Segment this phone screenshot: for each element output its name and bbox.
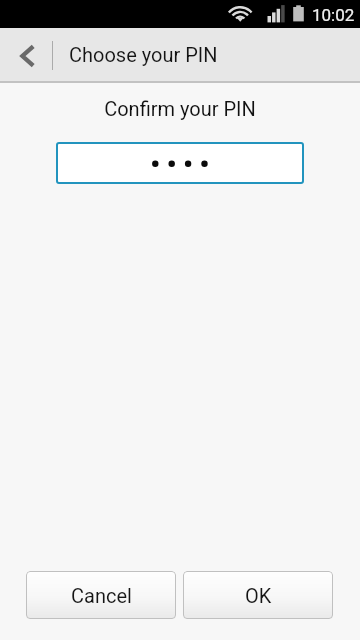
button[interactable]: OK [183, 571, 333, 619]
button[interactable] [56, 142, 304, 184]
staticText: Confirm your PIN [0, 97, 360, 120]
button[interactable]: Back [0, 28, 52, 81]
staticText: OK [245, 584, 272, 607]
staticText: Cancel [71, 584, 132, 607]
button[interactable]: Cancel [26, 571, 176, 619]
staticText: Choose your PIN [69, 43, 218, 66]
staticText: 10:02 [312, 5, 355, 25]
